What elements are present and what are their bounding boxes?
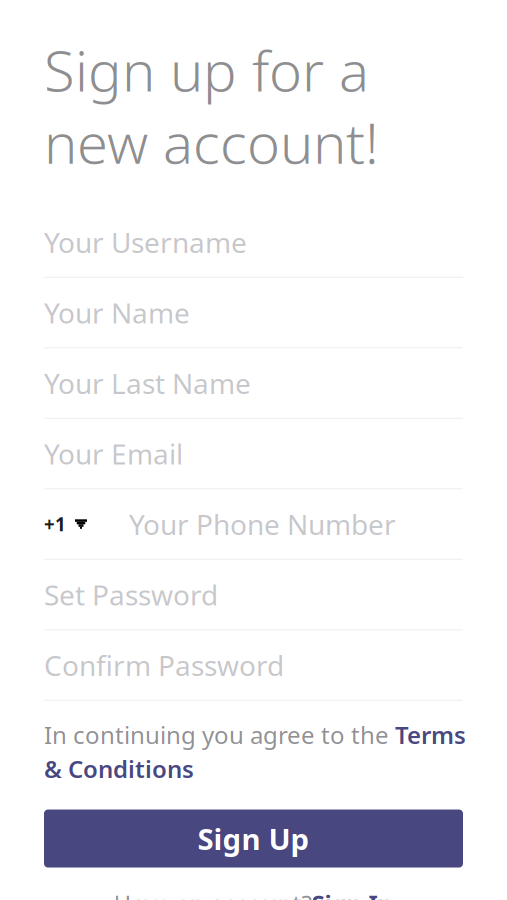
staticText: Terms — [395, 719, 466, 751]
button[interactable]: +1 — [44, 512, 87, 536]
staticText: +1 — [44, 512, 66, 536]
staticText: Your Phone Number — [129, 505, 396, 543]
button[interactable]: Have an account? — [44, 888, 463, 900]
staticText: Have an account? — [113, 888, 311, 900]
button[interactable]: Terms — [395, 719, 466, 751]
staticText: & Conditions — [44, 753, 194, 785]
staticText: Confirm Password — [44, 646, 284, 684]
staticText: Sign In — [311, 888, 393, 900]
staticText: Your Email — [44, 435, 183, 472]
staticText: new account! — [44, 105, 379, 179]
button[interactable]: Sign Up — [44, 810, 463, 868]
staticText: Your Last Name — [44, 364, 251, 402]
button[interactable]: & Conditions — [44, 753, 194, 785]
staticText: In continuing you agree to the — [44, 719, 395, 751]
staticText: Set Password — [44, 576, 218, 613]
staticText: Your Username — [44, 223, 247, 261]
staticText: Sign Up — [197, 819, 309, 858]
staticText: Sign up for a — [44, 33, 369, 107]
staticText: Your Name — [44, 294, 190, 331]
